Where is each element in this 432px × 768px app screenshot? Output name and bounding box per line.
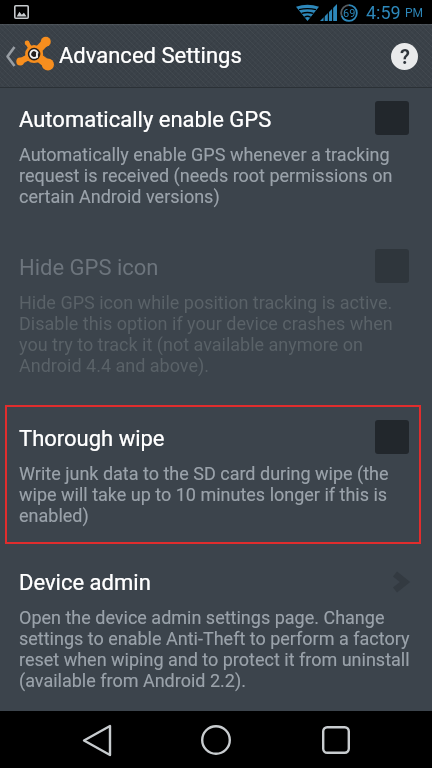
button[interactable]: Help <box>391 43 418 70</box>
staticText: 69 <box>343 7 356 20</box>
button[interactable]: Back <box>73 716 121 764</box>
staticText: Advanced Settings <box>59 43 242 69</box>
button[interactable]: Device admin <box>0 526 432 691</box>
staticText: 4:59 <box>366 2 401 23</box>
staticText: Device admin <box>19 570 151 596</box>
staticText: Automatically enable GPS whenever a trac… <box>19 144 417 207</box>
staticText: Thorough wipe <box>19 426 165 452</box>
button[interactable]: Automatically enable GPS <box>0 88 432 207</box>
button[interactable]: Recents <box>312 716 360 764</box>
button[interactable]: Thorough wipe <box>0 376 432 526</box>
staticText: Open the device admin settings page. Cha… <box>19 607 417 691</box>
other: Open Device admin <box>392 571 408 593</box>
staticText: PM <box>405 6 424 20</box>
staticText: ? <box>400 45 410 68</box>
button[interactable]: Hide GPS icon <box>0 207 432 376</box>
staticText: Automatically enable GPS <box>19 107 272 133</box>
staticText: Hide GPS icon <box>19 255 159 281</box>
button[interactable]: Home <box>192 716 240 764</box>
staticText: Write junk data to the SD card during wi… <box>19 463 417 526</box>
staticText: Hide GPS icon while position tracking is… <box>19 292 417 376</box>
